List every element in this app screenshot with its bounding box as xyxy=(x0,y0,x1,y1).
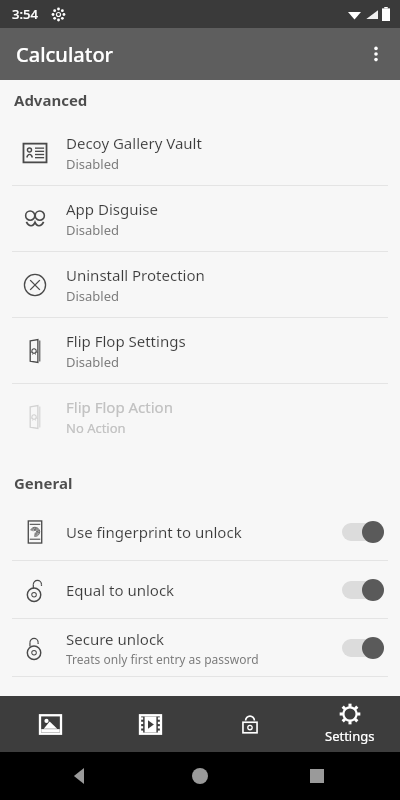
button[interactable]: Gallery xyxy=(0,696,100,752)
staticText: Disabled xyxy=(66,221,120,239)
staticText: No Action xyxy=(66,419,126,437)
staticText: Disabled xyxy=(66,353,120,371)
button[interactable]: More options xyxy=(352,30,400,78)
staticText: Advanced xyxy=(14,90,88,110)
button[interactable]: Flip Flop Settings xyxy=(0,318,400,383)
button[interactable]: App Disguise xyxy=(0,186,400,251)
button[interactable]: Flip Flop Action xyxy=(0,384,400,449)
staticText: Calculator xyxy=(16,41,114,68)
button[interactable]: Secure unlock xyxy=(0,619,400,676)
button[interactable]: Settings xyxy=(300,696,400,752)
button[interactable]: Uninstall Protection xyxy=(0,252,400,317)
staticText: Equal to unlock xyxy=(66,580,175,600)
staticText: Decoy Gallery Vault xyxy=(66,133,202,153)
staticText: Disabled xyxy=(66,287,120,305)
button[interactable]: Videos xyxy=(100,696,200,752)
staticText: Treats only first entry as password xyxy=(66,651,259,667)
staticText: Secure unlock xyxy=(66,629,165,649)
button[interactable]: Equal to unlock xyxy=(0,561,400,618)
staticText: General xyxy=(14,473,73,493)
staticText: Settings xyxy=(325,727,375,745)
staticText: Uninstall Protection xyxy=(66,265,205,285)
button[interactable]: Decoy Gallery Vault xyxy=(0,120,400,185)
staticText: Flip Flop Action xyxy=(66,397,173,417)
staticText: Flip Flop Settings xyxy=(66,331,186,351)
staticText: Use fingerprint to unlock xyxy=(66,522,242,542)
button[interactable]: Vault xyxy=(200,696,300,752)
staticText: Disabled xyxy=(66,155,120,173)
button[interactable]: Use fingerprint to unlock xyxy=(0,503,400,560)
staticText: 3:54 xyxy=(12,5,38,23)
staticText: App Disguise xyxy=(66,199,158,219)
